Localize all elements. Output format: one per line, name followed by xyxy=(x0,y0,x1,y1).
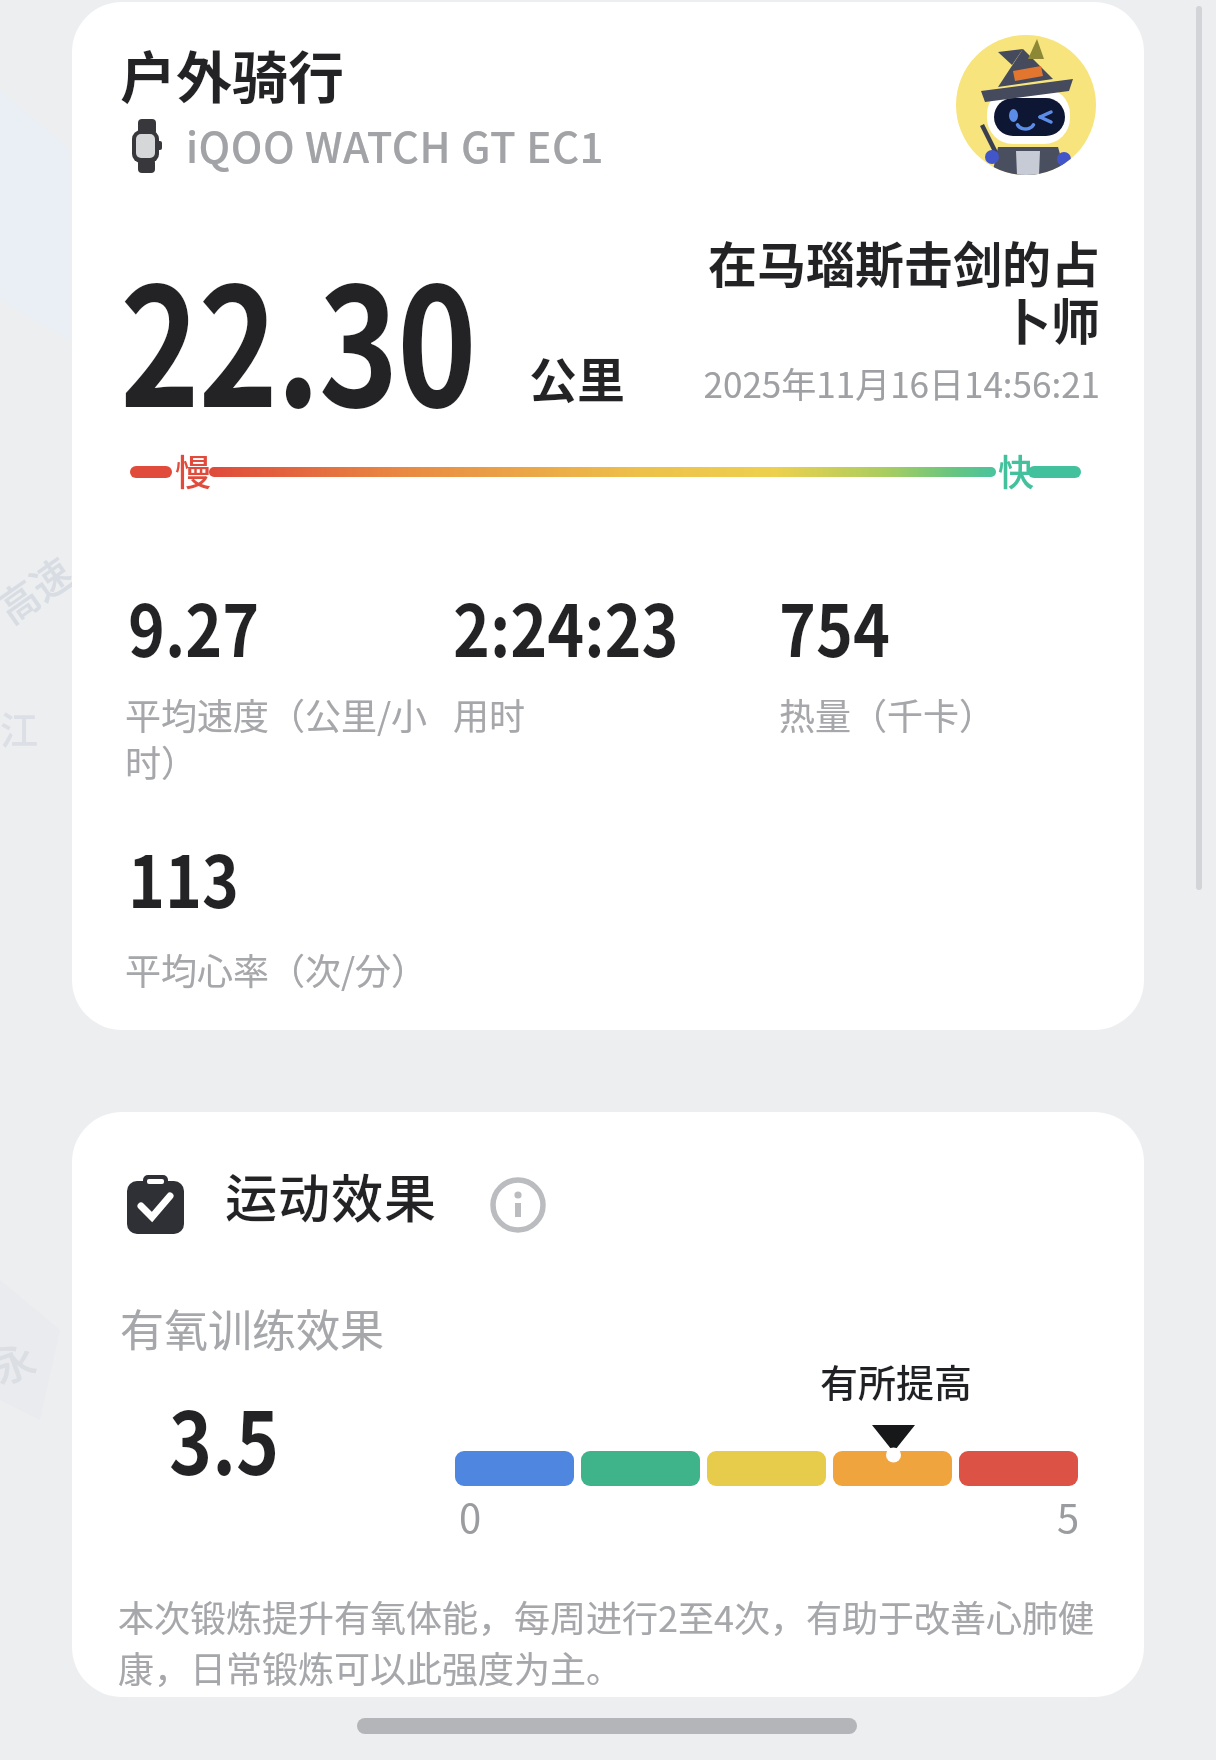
staticText: 平均心率（次/分） xyxy=(125,943,428,995)
staticText: 22.30 xyxy=(120,216,476,455)
staticText: 在马瑙斯击剑的占 卜师 xyxy=(500,226,1100,355)
staticText: iQOO WATCH GT EC1 xyxy=(186,114,604,175)
staticText: 113 xyxy=(128,824,239,928)
staticText: 用时 xyxy=(453,688,526,740)
button[interactable] xyxy=(956,35,1096,175)
staticText: 2:24:23 xyxy=(453,573,679,677)
staticText: 快 xyxy=(998,444,1035,496)
button[interactable] xyxy=(485,1172,551,1238)
staticText: 754 xyxy=(779,573,890,677)
staticText: 本次锻炼提升有氧体能，每周进行2至4次，有助于改善心肺健 康，日常锻炼可以此强度… xyxy=(118,1590,1094,1693)
staticText: 平均速度（公里/小 时） xyxy=(125,688,428,787)
staticText: 慢 xyxy=(175,444,212,496)
staticText: 5 xyxy=(1057,1487,1080,1545)
staticText: 公里 xyxy=(529,342,626,412)
staticText: 运动效果 xyxy=(225,1158,438,1233)
staticText: 有氧训练效果 xyxy=(120,1296,384,1360)
staticText: 永 xyxy=(0,1324,44,1396)
staticText: 户外骑行 xyxy=(120,33,344,114)
staticText: 2025年11月16日14:56:21 xyxy=(500,357,1100,408)
staticText: 江 xyxy=(0,700,39,755)
staticText: 9.27 xyxy=(128,573,259,677)
staticText: 热量（千卡） xyxy=(779,688,996,740)
staticText: 0 xyxy=(459,1487,482,1545)
button[interactable] xyxy=(122,114,692,180)
staticText: 3.5 xyxy=(169,1375,279,1500)
staticText: 有所提高 xyxy=(820,1353,973,1408)
staticText: 高速 xyxy=(0,542,83,636)
